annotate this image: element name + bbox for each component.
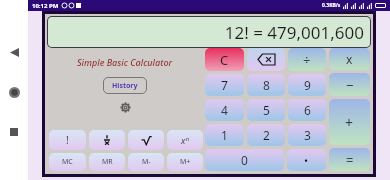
button[interactable]: Settings <box>118 100 132 114</box>
button[interactable] <box>128 130 164 150</box>
button[interactable]: 9 <box>288 74 326 96</box>
staticText: 7 <box>221 77 228 93</box>
button[interactable]: M- <box>128 153 164 171</box>
button[interactable]: xⁿ <box>167 130 203 150</box>
staticText: ! <box>66 133 69 147</box>
button[interactable]: 4 <box>205 99 244 121</box>
staticText: = <box>346 151 354 169</box>
staticText: 12! = 479,001,600 <box>224 21 364 44</box>
staticText: 0 <box>241 152 248 168</box>
button[interactable]: MC <box>49 153 86 171</box>
staticText: − <box>346 76 354 94</box>
staticText: 1 <box>221 127 228 143</box>
button[interactable]: History <box>103 77 147 94</box>
staticText: 4 <box>221 102 228 118</box>
button[interactable]: 8 <box>247 74 285 96</box>
button[interactable]: = <box>329 148 370 171</box>
staticText: xⁿ <box>181 134 189 146</box>
staticText: • <box>304 153 309 168</box>
button[interactable]: Home <box>4 82 24 102</box>
staticText: History <box>112 81 138 91</box>
button[interactable]: MR <box>89 153 125 171</box>
button[interactable]: 1 <box>205 124 244 146</box>
button[interactable]: M+ <box>167 153 203 171</box>
button[interactable]: ÷ <box>288 48 326 71</box>
staticText: 3 <box>304 127 311 143</box>
button[interactable]: Backspace <box>247 48 285 71</box>
staticText: C <box>220 51 229 69</box>
staticText: 5 <box>263 102 270 118</box>
button[interactable]: C <box>205 48 244 71</box>
staticText: 2 <box>263 127 270 143</box>
staticText: 9 <box>304 77 311 93</box>
button[interactable] <box>89 130 125 150</box>
button[interactable]: − <box>329 73 370 96</box>
button[interactable]: 6 <box>288 99 326 121</box>
button[interactable]: 3 <box>288 124 326 146</box>
button[interactable]: ! <box>49 130 86 150</box>
staticText: Simple Basic Calculator <box>77 56 173 68</box>
staticText: ÷ <box>303 51 311 69</box>
staticText: 10:12 PM <box>32 2 59 10</box>
button[interactable]: + <box>329 99 370 145</box>
staticText: 8 <box>263 77 270 93</box>
button[interactable]: x <box>329 48 370 70</box>
staticText: M- <box>142 157 151 167</box>
staticText: MR <box>102 157 113 167</box>
button[interactable]: 2 <box>247 124 285 146</box>
staticText: x <box>346 51 353 67</box>
staticText: M+ <box>180 157 191 167</box>
staticText: 6 <box>304 102 311 118</box>
button[interactable]: 5 <box>247 99 285 121</box>
button[interactable]: 0 <box>205 149 284 171</box>
button[interactable]: Back <box>4 42 24 62</box>
staticText: MC <box>62 157 73 167</box>
button[interactable]: 7 <box>205 74 244 96</box>
staticText: 0.3KB/s <box>322 2 341 9</box>
button[interactable]: • <box>287 149 326 171</box>
staticText: + <box>345 113 354 132</box>
button[interactable]: Recents <box>4 122 24 142</box>
